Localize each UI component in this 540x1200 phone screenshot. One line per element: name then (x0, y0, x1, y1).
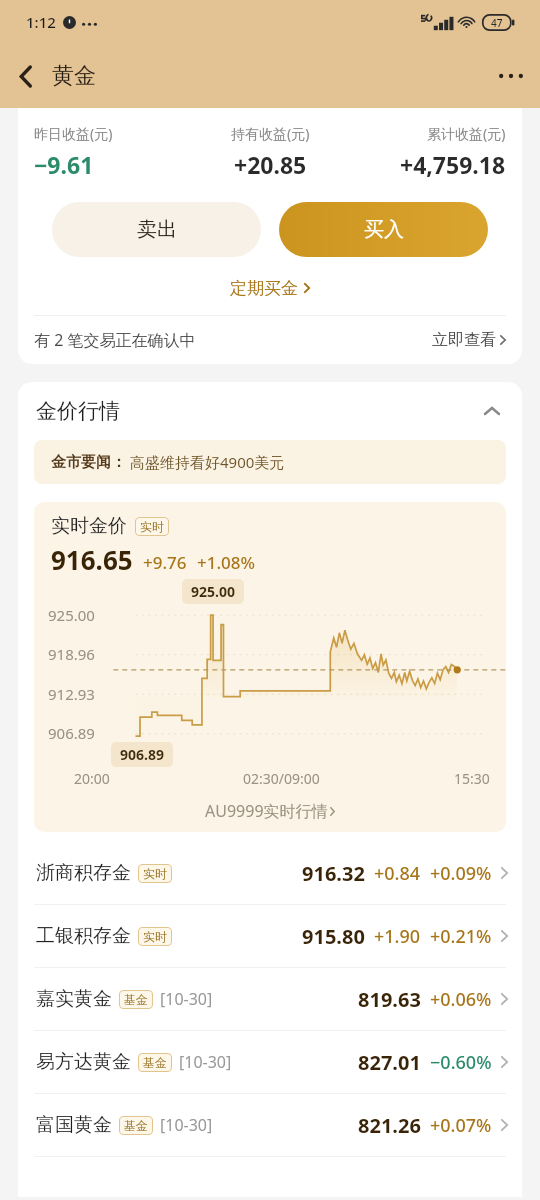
staticText: 1:12 (26, 12, 56, 32)
staticText: +4,759.18 (400, 149, 506, 180)
staticText: 持有收益(元) (231, 124, 310, 143)
staticText: 918.96 (48, 644, 95, 664)
staticText: 实时 (143, 866, 167, 881)
staticText: 高盛维持看好4900美元 (130, 452, 285, 472)
button[interactable]: 富国黄金 (36, 1094, 508, 1156)
staticText: −0.60% (430, 1050, 492, 1075)
staticText: 915.80 (302, 923, 365, 950)
staticText: 金市要闻： (51, 453, 126, 472)
staticText: −9.61 (34, 149, 94, 180)
button[interactable]: More options (482, 44, 540, 108)
button[interactable]: 易方达黄金 (36, 1031, 508, 1093)
staticText: 卖出 (137, 217, 177, 242)
staticText: 昨日收益(元) (34, 124, 113, 143)
staticText: 累计收益(元) (427, 124, 506, 143)
staticText: 912.93 (48, 684, 95, 704)
button[interactable]: 浙商积存金 (36, 842, 508, 904)
staticText: 浙商积存金 (36, 861, 131, 885)
staticText: 基金 (124, 1118, 148, 1133)
staticText: 易方达黄金 (36, 1050, 131, 1074)
staticText: 基金 (124, 992, 148, 1007)
staticText: 买入 (364, 217, 404, 242)
staticText: 821.26 (358, 1112, 421, 1139)
button[interactable]: 买入 (279, 202, 488, 257)
button[interactable]: 有 2 笔交易正在确认中 (34, 316, 506, 364)
staticText: 金价行情 (36, 398, 120, 424)
staticText: 827.01 (358, 1049, 421, 1076)
staticText: 黄金 (52, 62, 96, 90)
button[interactable]: 嘉实黄金 (36, 968, 508, 1030)
staticText: 02:30/09:00 (243, 769, 320, 788)
staticText: 实时金价 (51, 514, 127, 538)
button[interactable]: 金价行情 (36, 382, 510, 440)
staticText: 916.65 (51, 542, 133, 577)
staticText: +20.85 (234, 149, 307, 180)
staticText: 906.89 (48, 723, 95, 743)
button[interactable]: Back (0, 44, 52, 108)
staticText: 916.32 (302, 860, 365, 887)
staticText: +1.90 (374, 924, 421, 949)
staticText: [10-30] (160, 1114, 213, 1136)
staticText: +0.07% (430, 1113, 492, 1138)
staticText: 20:00 (74, 769, 110, 788)
staticText: 925.00 (191, 582, 235, 601)
staticText: 906.89 (120, 745, 164, 764)
staticText: +9.76 (143, 551, 187, 574)
button[interactable]: Collapse (474, 393, 510, 429)
staticText: 定期买金 (230, 278, 298, 299)
staticText: [10-30] (160, 988, 213, 1010)
staticText: 工银积存金 (36, 924, 131, 948)
staticText: 47 (491, 16, 503, 30)
staticText: 嘉实黄金 (36, 987, 112, 1011)
staticText: 基金 (143, 1055, 167, 1070)
staticText: 实时 (143, 929, 167, 944)
staticText: 819.63 (358, 986, 421, 1013)
staticText: 有 2 笔交易正在确认中 (34, 329, 196, 351)
staticText: +1.08% (197, 551, 256, 574)
staticText: +0.06% (430, 987, 492, 1012)
button[interactable]: 金市要闻： (34, 440, 506, 484)
button[interactable]: AU9999实时行情 (34, 790, 506, 832)
staticText: 实时 (140, 519, 164, 534)
button[interactable]: 工银积存金 (36, 905, 508, 967)
staticText: 15:30 (454, 769, 490, 788)
staticText: 富国黄金 (36, 1113, 112, 1137)
staticText: 925.00 (48, 605, 95, 625)
staticText: +0.21% (430, 924, 492, 949)
button[interactable]: 定期买金 (18, 269, 522, 307)
button[interactable]: 卖出 (52, 202, 261, 257)
staticText: [10-30] (179, 1051, 232, 1073)
staticText: +0.84 (374, 861, 421, 886)
staticText: AU9999实时行情 (205, 800, 328, 822)
staticText: 立即查看 (432, 330, 496, 350)
staticText: +0.09% (430, 861, 492, 886)
